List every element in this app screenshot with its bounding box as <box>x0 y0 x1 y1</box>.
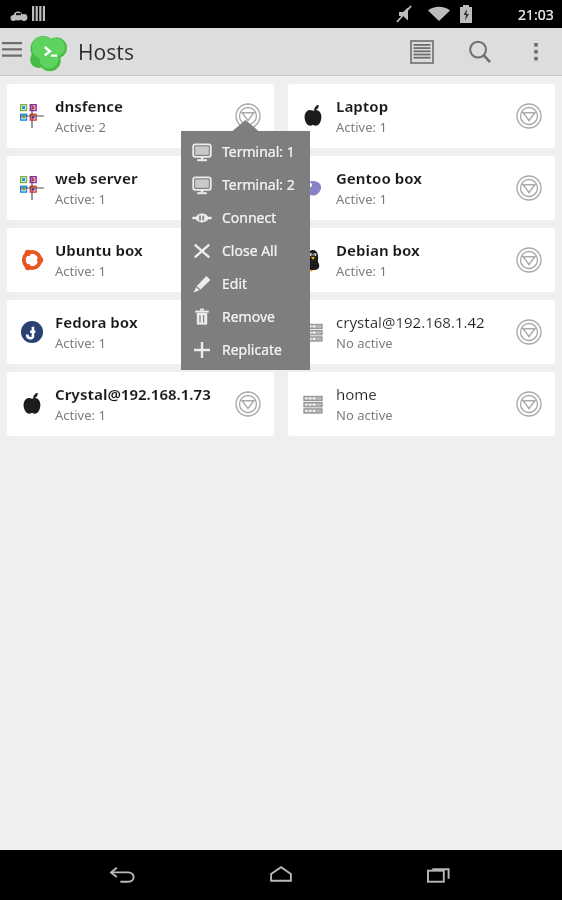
staticText: Connect <box>222 208 277 227</box>
staticText: Crystal@192.168.1.73 <box>55 384 211 404</box>
button[interactable]: Home <box>246 850 316 900</box>
staticText: Debian box <box>336 240 420 260</box>
button[interactable]: Expand Debian box <box>507 238 551 282</box>
staticText: Edit <box>222 274 248 293</box>
staticText: 21:03 <box>518 5 554 24</box>
staticText: Active: 1 <box>336 262 387 280</box>
button[interactable]: web server <box>7 156 274 220</box>
button[interactable]: Expand crystal@192.168.1.42 <box>507 310 551 354</box>
staticText: Replicate <box>222 340 282 359</box>
button[interactable]: dnsfence <box>7 84 274 148</box>
button[interactable]: More options <box>510 28 562 76</box>
staticText: Remove <box>222 307 275 326</box>
button[interactable]: Replicate <box>181 333 310 366</box>
staticText: Close All <box>222 241 278 260</box>
button[interactable]: Expand Gentoo box <box>507 166 551 210</box>
button[interactable]: Expand Crystal@192.168.1.73 <box>226 382 270 426</box>
staticText: No active <box>336 406 393 424</box>
button[interactable]: Connect <box>181 201 310 234</box>
staticText: Ubuntu box <box>55 240 143 260</box>
staticText: web server <box>55 168 138 188</box>
button[interactable]: home <box>288 372 555 436</box>
button[interactable]: Expand Fedora box <box>226 310 270 354</box>
button[interactable]: Back <box>88 850 158 900</box>
staticText: Gentoo box <box>336 168 422 188</box>
button[interactable]: Expand Ubuntu box <box>226 238 270 282</box>
button[interactable]: Expand dnsfence <box>226 94 270 138</box>
button[interactable]: Close All <box>181 234 310 267</box>
button[interactable]: Remove <box>181 300 310 333</box>
button[interactable]: Recent apps <box>404 850 474 900</box>
staticText: Active: 1 <box>55 334 106 352</box>
button[interactable]: Fedora box <box>7 300 274 364</box>
staticText: dnsfence <box>55 96 123 116</box>
staticText: Terminal: 1 <box>222 142 295 161</box>
staticText: Terminal: 2 <box>222 175 295 194</box>
staticText: crystal@192.168.1.42 <box>336 312 485 332</box>
staticText: Active: 1 <box>55 406 106 424</box>
button[interactable]: List view <box>394 28 450 76</box>
button[interactable]: Crystal@192.168.1.73 <box>7 372 274 436</box>
staticText: Active: 1 <box>55 190 106 208</box>
button[interactable]: Expand Laptop <box>507 94 551 138</box>
staticText: Active: 2 <box>55 118 106 136</box>
button[interactable]: Debian box <box>288 228 555 292</box>
button[interactable]: crystal@192.168.1.42 <box>288 300 555 364</box>
button[interactable]: Ubuntu box <box>7 228 274 292</box>
button[interactable]: Terminal: 1 <box>181 135 310 168</box>
staticText: Active: 1 <box>55 262 106 280</box>
staticText: Fedora box <box>55 312 138 332</box>
button[interactable]: Edit <box>181 267 310 300</box>
staticText: Active: 1 <box>336 118 387 136</box>
staticText: No active <box>336 334 393 352</box>
button[interactable]: Expand home <box>507 382 551 426</box>
button[interactable]: Terminal: 2 <box>181 168 310 201</box>
button[interactable]: Expand web server <box>226 166 270 210</box>
staticText: Active: 1 <box>336 190 387 208</box>
button[interactable]: Laptop <box>288 84 555 148</box>
button[interactable]: Gentoo box <box>288 156 555 220</box>
button[interactable]: Navigation drawer <box>0 28 24 76</box>
button[interactable]: Search <box>450 28 510 76</box>
staticText: home <box>336 384 377 404</box>
staticText: Laptop <box>336 96 389 116</box>
staticText: Hosts <box>78 38 134 67</box>
